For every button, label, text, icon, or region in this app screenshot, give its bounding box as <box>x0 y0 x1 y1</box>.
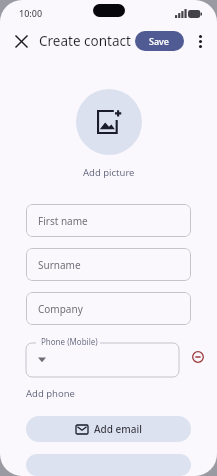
staticText: Add phone <box>26 387 75 400</box>
staticText: Phone (Mobile) <box>41 336 98 347</box>
staticText: Save <box>149 35 170 47</box>
staticText: Add picture <box>83 166 135 179</box>
button[interactable]: Company <box>26 292 191 325</box>
button[interactable]: First name <box>26 204 191 237</box>
staticText: Company <box>38 302 83 316</box>
button[interactable]: Add email <box>26 416 191 442</box>
button[interactable]: Add picture <box>76 89 142 155</box>
button[interactable]: Close <box>8 28 34 54</box>
staticText: Create contact <box>39 32 131 50</box>
button[interactable]: Add address <box>26 454 191 476</box>
button[interactable]: Phone Mobile <box>26 337 179 377</box>
staticText: 10:00 <box>19 7 43 19</box>
button[interactable]: Surname <box>26 248 191 281</box>
button[interactable]: Add phone <box>22 385 79 402</box>
staticText: Add email <box>94 422 142 436</box>
button[interactable]: Remove phone <box>187 346 209 368</box>
button[interactable]: More options <box>188 29 212 53</box>
staticText: Surname <box>38 258 81 272</box>
button[interactable]: Save <box>135 31 184 51</box>
staticText: First name <box>38 214 88 228</box>
